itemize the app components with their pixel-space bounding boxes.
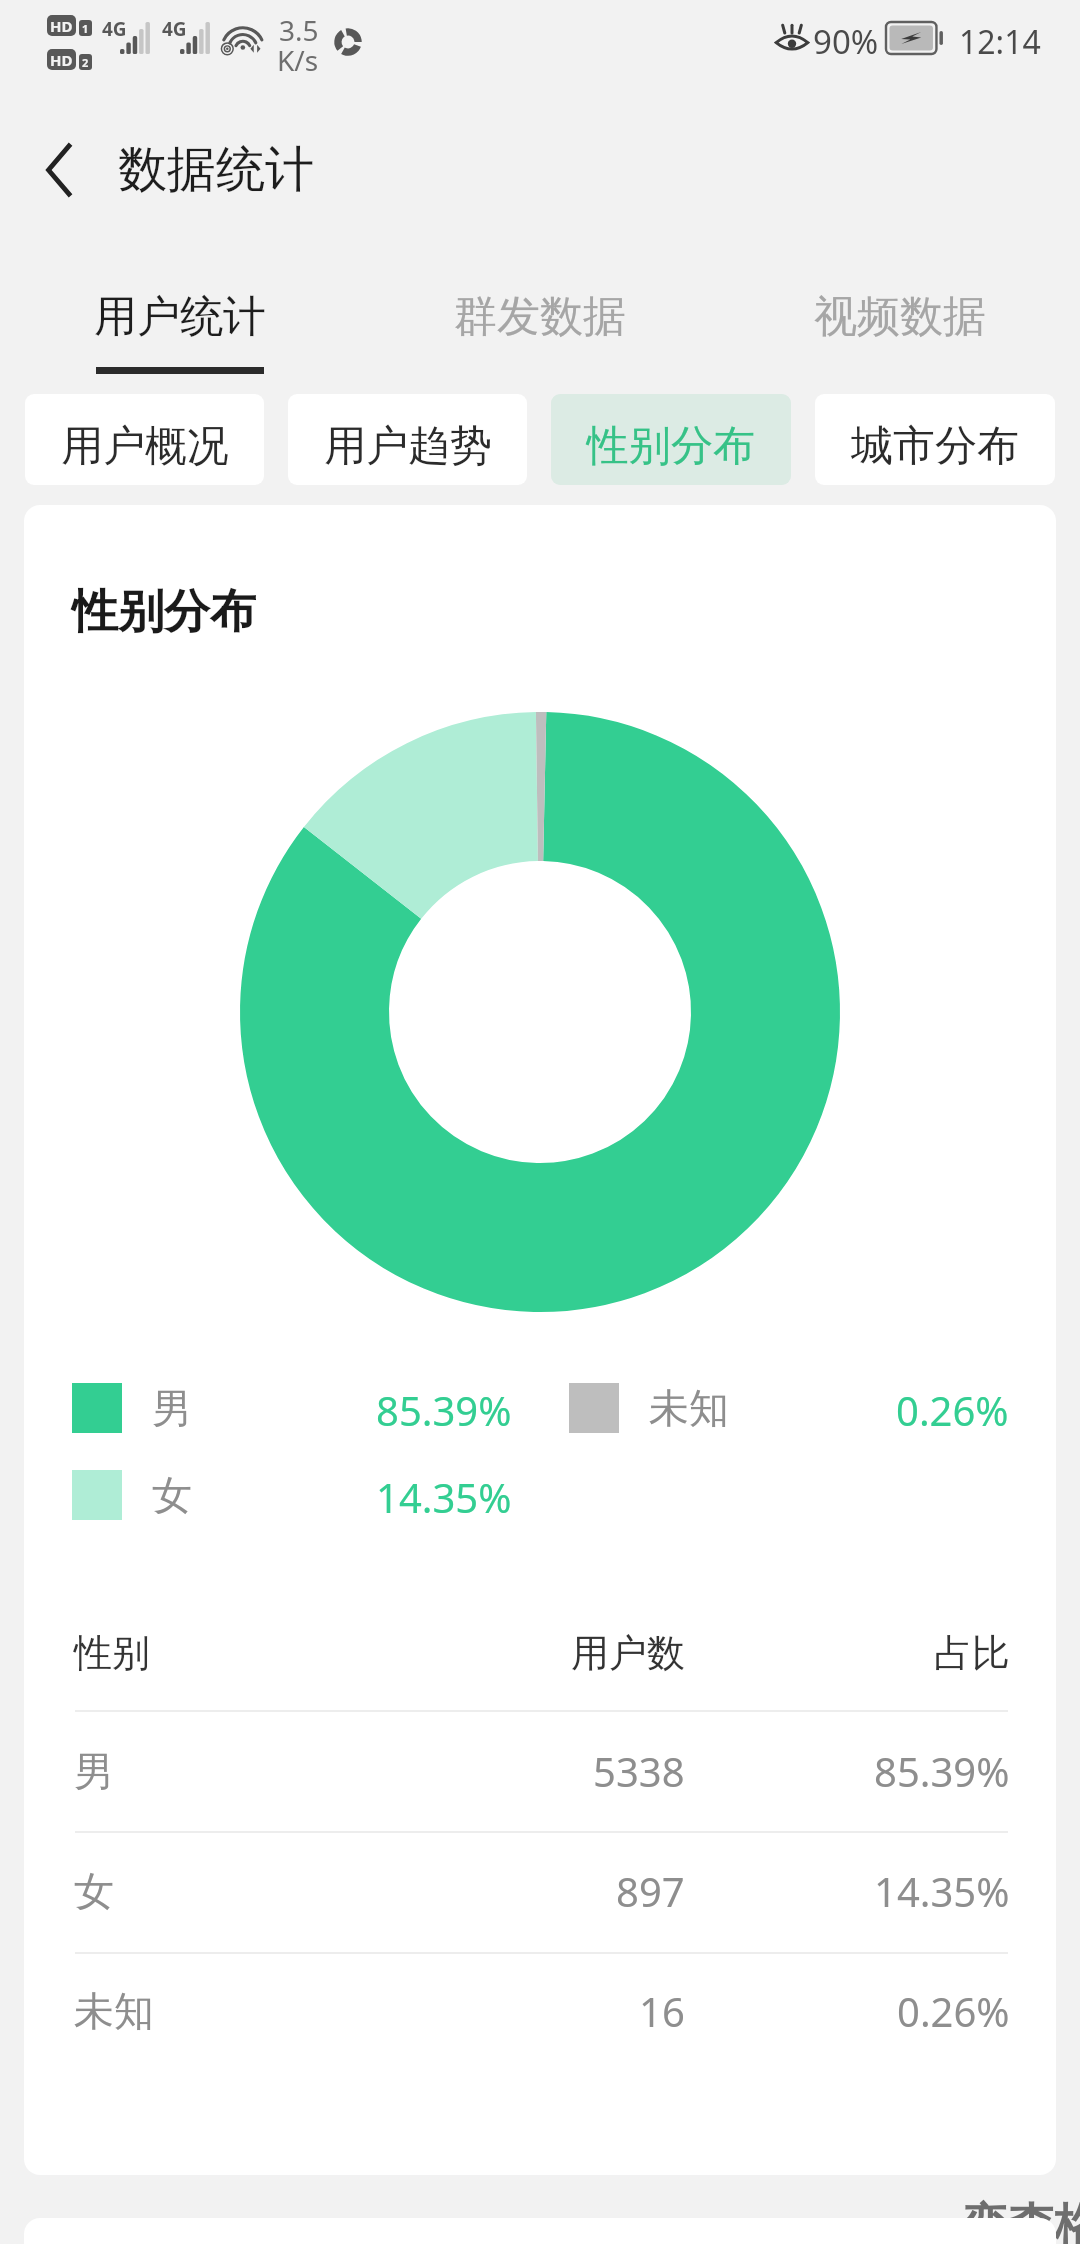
staticText: 3.5 <box>279 11 319 49</box>
staticText: 性别分布 <box>72 583 256 641</box>
staticText: 用户趋势 <box>324 420 492 473</box>
staticText: 用户概况 <box>61 420 229 473</box>
staticText: 女 <box>74 1866 114 1916</box>
button[interactable]: 女 <box>72 1470 512 1520</box>
staticText: 12:14 <box>959 20 1041 64</box>
staticText: 占比 <box>934 1629 1010 1677</box>
staticText: 男 <box>152 1383 192 1433</box>
staticText: 2 <box>82 55 89 70</box>
staticText: 性别 <box>74 1629 150 1677</box>
staticText: 0.26% <box>896 1383 1009 1433</box>
staticText: 897 <box>616 1864 685 1918</box>
staticText: 男 <box>74 1746 114 1796</box>
staticText: 视频数据 <box>814 290 986 344</box>
button[interactable]: 群发数据 <box>360 215 720 393</box>
button[interactable]: 男 <box>72 1383 512 1433</box>
staticText: K/s <box>277 41 319 79</box>
button[interactable]: 未知 <box>569 1383 1009 1433</box>
button[interactable]: 用户概况 <box>25 394 264 485</box>
button[interactable]: Back <box>26 130 90 210</box>
staticText: HD <box>50 50 73 70</box>
button[interactable]: 男 <box>24 1731 1056 1811</box>
staticText: 未知 <box>74 1986 154 2036</box>
staticText: 城市分布 <box>851 420 1019 473</box>
staticText: 14.35% <box>376 1470 512 1520</box>
staticText: 85.39% <box>376 1383 512 1433</box>
staticText: 0.26% <box>897 1984 1010 2038</box>
staticText: 用户数 <box>571 1629 685 1677</box>
button[interactable]: 性别 <box>24 1613 1056 1693</box>
staticText: 4G <box>162 16 187 42</box>
staticText: 数据统计 <box>118 139 314 201</box>
button[interactable]: 用户趋势 <box>288 394 527 485</box>
staticText: 5338 <box>593 1744 685 1798</box>
staticText: 85.39% <box>874 1744 1010 1798</box>
button[interactable]: 城市分布 <box>815 394 1055 485</box>
staticText: 1 <box>82 21 89 36</box>
staticText: 性别分布 <box>587 420 755 473</box>
button[interactable]: 视频数据 <box>720 215 1080 393</box>
button[interactable]: 用户统计 <box>0 215 360 393</box>
staticText: 女 <box>152 1470 192 1520</box>
button[interactable]: 女 <box>24 1851 1056 1931</box>
button[interactable]: 未知 <box>24 1971 1056 2051</box>
button[interactable]: 性别分布 <box>551 394 791 485</box>
staticText: 未知 <box>649 1383 729 1433</box>
staticText: 群发数据 <box>454 290 626 344</box>
staticText: HD <box>50 16 73 36</box>
staticText: 用户统计 <box>94 290 266 344</box>
staticText: 奕森格 <box>962 2197 1080 2244</box>
staticText: 16 <box>639 1984 685 2038</box>
staticText: 90% <box>813 19 879 64</box>
staticText: 4G <box>102 16 127 42</box>
staticText: 14.35% <box>874 1864 1010 1918</box>
